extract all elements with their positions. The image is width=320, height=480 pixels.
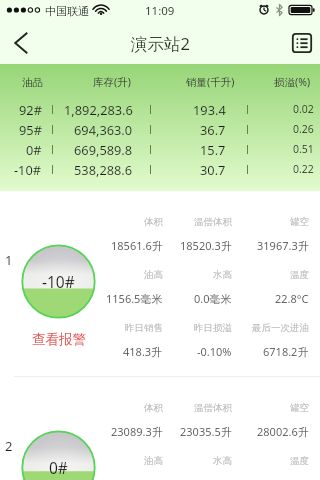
staticText: 体积 — [144, 216, 163, 228]
button[interactable]: Tank 0# — [21, 430, 96, 480]
staticText: 28002.6升 — [257, 424, 309, 438]
staticText: 11:09 — [145, 3, 175, 19]
staticText: 水高 — [213, 269, 232, 281]
staticText: 罐空 — [290, 402, 309, 414]
staticText: 体积 — [144, 402, 163, 414]
staticText: 18520.3升 — [180, 238, 232, 252]
staticText: -0.10% — [197, 344, 232, 358]
staticText: 温偿体积 — [194, 402, 232, 414]
button[interactable]: Tank -10# — [21, 244, 96, 319]
staticText: 水高 — [213, 455, 232, 467]
staticText: 罐空 — [290, 216, 309, 228]
staticText: 2 — [5, 437, 13, 455]
staticText: 1 — [5, 251, 13, 269]
staticText: 0.22 — [293, 162, 314, 176]
staticText: 查看报警 — [32, 331, 86, 348]
staticText: 油高 — [144, 455, 163, 467]
staticText: 15.7 — [200, 141, 226, 158]
staticText: 库存(升) — [93, 75, 131, 89]
staticText: 1156.5毫米 — [106, 291, 163, 305]
staticText: 温度 — [290, 455, 309, 467]
staticText: 温度 — [290, 269, 309, 281]
staticText: 669,589.8 — [74, 141, 133, 158]
staticText: 23035.5升 — [180, 424, 232, 438]
staticText: 95# — [19, 121, 42, 138]
button[interactable]: 1 — [0, 191, 320, 376]
staticText: -10# — [14, 161, 42, 178]
staticText: 0.51 — [293, 142, 314, 156]
staticText: 36.7 — [200, 121, 226, 138]
staticText: 0.02 — [293, 102, 314, 116]
staticText: 油高 — [144, 269, 163, 281]
staticText: 油品 — [22, 76, 43, 89]
staticText: 31967.3升 — [257, 238, 309, 252]
button[interactable]: 查看报警 — [14, 330, 104, 348]
staticText: 30.7 — [200, 161, 226, 178]
button[interactable]: List — [284, 22, 320, 64]
staticText: 销量(千升) — [186, 75, 235, 89]
staticText: 418.3升 — [123, 344, 163, 358]
staticText: 0# — [49, 457, 68, 478]
staticText: -10# — [42, 271, 75, 292]
staticText: 694,363.0 — [74, 121, 133, 138]
staticText: 昨日损溢 — [194, 322, 232, 334]
button[interactable]: Back — [0, 22, 44, 64]
staticText: 温偿体积 — [194, 216, 232, 228]
staticText: 损溢(%) — [274, 75, 311, 89]
staticText: 23089.3升 — [111, 424, 163, 438]
staticText: 演示站2 — [131, 32, 190, 55]
button[interactable]: 2 — [0, 377, 320, 480]
staticText: 538,288.6 — [74, 161, 133, 178]
staticText: 193.4 — [193, 101, 226, 118]
staticText: 18561.6升 — [111, 238, 163, 252]
staticText: 最后一次进油 — [252, 322, 309, 334]
staticText: 6718.2升 — [263, 344, 309, 358]
staticText: 昨日销售 — [125, 322, 163, 334]
staticText: 22.8°C — [275, 291, 309, 305]
staticText: 中国联通 — [45, 4, 89, 18]
staticText: 92# — [19, 101, 42, 118]
staticText: 0# — [26, 141, 42, 158]
staticText: 0.0毫米 — [194, 291, 232, 305]
staticText: 0.26 — [293, 122, 314, 136]
staticText: 1,892,283.6 — [64, 101, 133, 118]
